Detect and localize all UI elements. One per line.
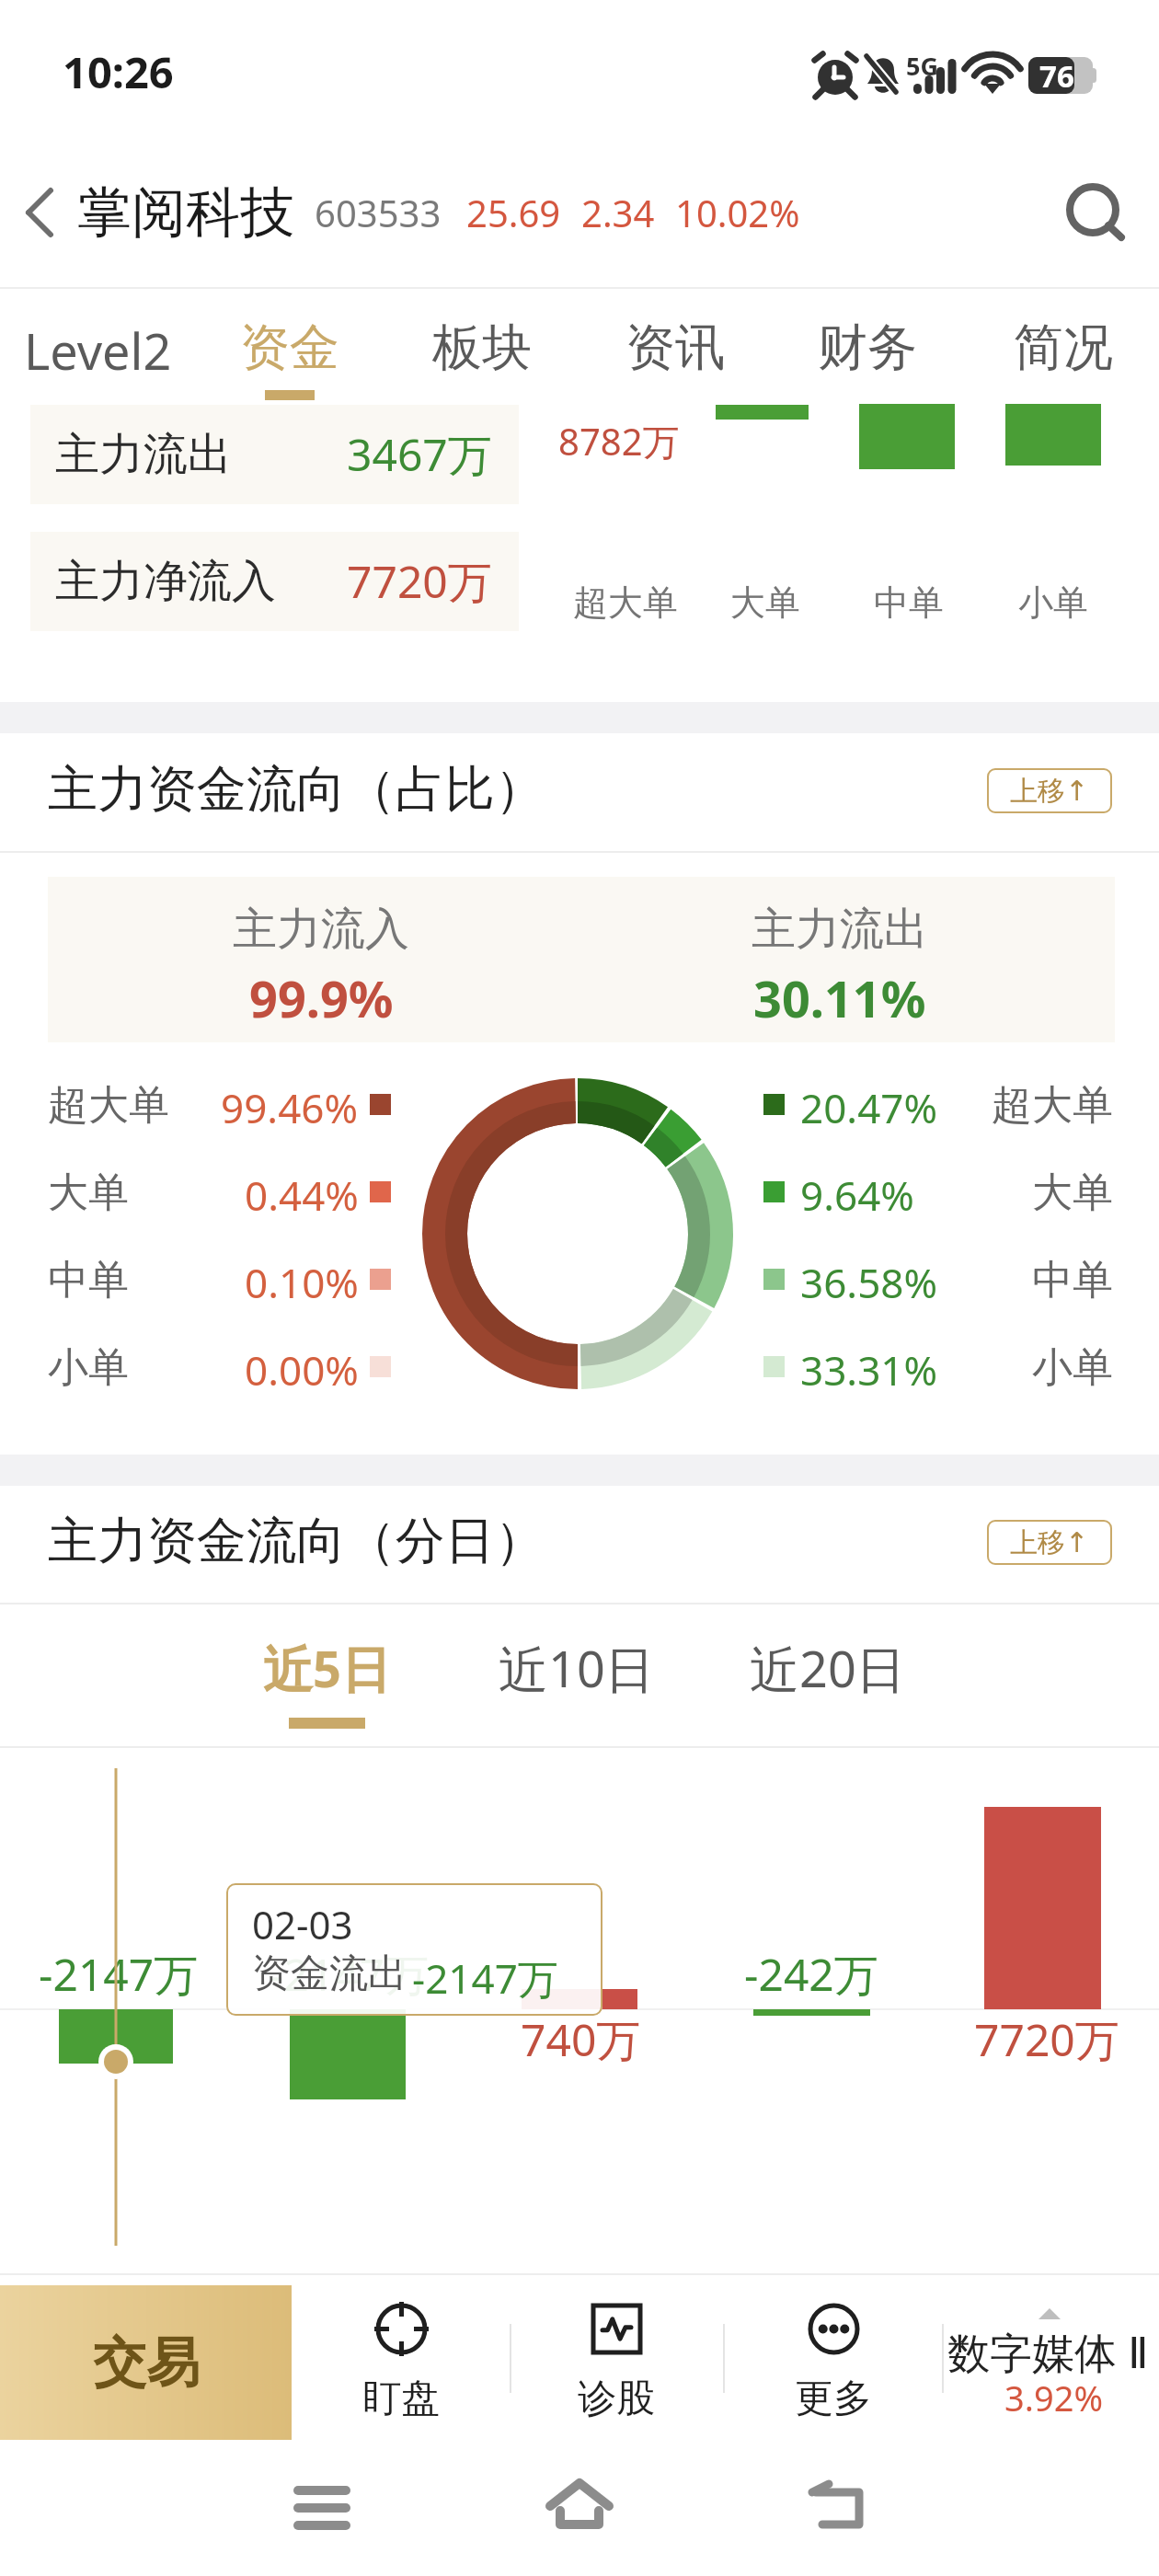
staticText: 近20日 bbox=[750, 1634, 906, 1702]
button[interactable]: 更多 bbox=[741, 2285, 925, 2440]
button[interactable]: 板块 bbox=[385, 316, 579, 408]
staticText: 资金流出 bbox=[252, 1949, 407, 1998]
staticText: 0.00% bbox=[245, 1342, 359, 1397]
button[interactable]: 简况 bbox=[967, 316, 1159, 408]
staticText: 主力流出 bbox=[55, 427, 232, 482]
button[interactable]: 近5日 bbox=[216, 1604, 437, 1746]
staticText: 超大单 bbox=[992, 1080, 1113, 1131]
staticText: Level2 bbox=[24, 316, 172, 385]
button[interactable]: 财务 bbox=[771, 316, 964, 408]
staticText: 9.64% bbox=[800, 1167, 914, 1223]
button[interactable]: Home bbox=[522, 2466, 633, 2558]
staticText: 0.44% bbox=[245, 1167, 359, 1223]
staticText: 中单 bbox=[48, 1255, 129, 1305]
staticText: 3.92% bbox=[1004, 2374, 1103, 2421]
staticText: 超大单 bbox=[48, 1080, 169, 1131]
staticText: 0.10% bbox=[245, 1255, 359, 1310]
button[interactable]: Back bbox=[0, 171, 83, 254]
staticText: 小单 bbox=[1018, 581, 1088, 625]
staticText: 超大单 bbox=[573, 581, 678, 625]
button[interactable]: 近20日 bbox=[717, 1604, 938, 1746]
staticText: 主力流入 bbox=[233, 902, 409, 957]
staticText: 中单 bbox=[1032, 1255, 1113, 1305]
button[interactable]: 上移↑ bbox=[987, 768, 1112, 813]
staticText: 诊股 bbox=[578, 2375, 655, 2423]
staticText: 近10日 bbox=[499, 1634, 655, 1702]
button[interactable]: Level2 bbox=[1, 316, 194, 408]
staticText: 99.46% bbox=[221, 1080, 359, 1135]
button[interactable]: 近10日 bbox=[466, 1604, 687, 1746]
staticText: 大单 bbox=[48, 1167, 129, 1218]
staticText: 中单 bbox=[874, 581, 944, 625]
staticText: 资讯 bbox=[625, 316, 725, 379]
staticText: 主力资金流向（分日） bbox=[48, 1510, 545, 1572]
staticText: 主力净流入 bbox=[55, 554, 276, 609]
staticText: 740万 bbox=[521, 2009, 641, 2070]
button[interactable]: 上移↑ bbox=[987, 1520, 1112, 1565]
staticText: 20.47% bbox=[800, 1080, 938, 1135]
staticText: -2147万 bbox=[39, 1944, 199, 2005]
button[interactable]: 主力流出 bbox=[30, 405, 519, 504]
staticText: 10.02% bbox=[675, 188, 800, 237]
staticText: 资金 bbox=[240, 316, 339, 379]
staticText: 简况 bbox=[1014, 316, 1113, 379]
staticText: 99.9% bbox=[249, 964, 394, 1032]
staticText: 7720万 bbox=[347, 551, 492, 612]
button[interactable]: 交易 bbox=[0, 2285, 292, 2440]
button[interactable]: Recents bbox=[267, 2466, 377, 2558]
staticText: 36.58% bbox=[800, 1255, 938, 1310]
button[interactable]: 主力净流入 bbox=[30, 532, 519, 631]
staticText: 主力流出 bbox=[752, 902, 928, 957]
staticText: 30.11% bbox=[753, 964, 926, 1032]
staticText: 更多 bbox=[795, 2375, 872, 2423]
staticText: 主力资金流向（占比） bbox=[48, 758, 545, 821]
staticText: 交易 bbox=[93, 2329, 200, 2397]
button[interactable]: 盯盘 bbox=[309, 2285, 493, 2440]
staticText: 25.69 bbox=[466, 188, 561, 237]
button[interactable]: 资金 bbox=[193, 316, 386, 408]
button[interactable]: Search bbox=[1049, 168, 1137, 257]
staticText: -2147万 bbox=[412, 1950, 558, 2006]
staticText: 5G bbox=[906, 49, 938, 83]
staticText: 上移↑ bbox=[1010, 1525, 1089, 1560]
staticText: 数字媒体 Ⅱ bbox=[947, 2323, 1149, 2381]
staticText: 上移↑ bbox=[1010, 774, 1089, 809]
staticText: 掌阅科技 bbox=[77, 178, 294, 247]
staticText: 板块 bbox=[432, 316, 532, 379]
button[interactable]: Back bbox=[782, 2466, 892, 2558]
staticText: 财务 bbox=[818, 316, 917, 379]
staticText: 02-03 bbox=[252, 1898, 353, 1950]
staticText: -2147万 bbox=[270, 1944, 430, 2005]
staticText: -242万 bbox=[744, 1944, 878, 2005]
staticText: 小单 bbox=[48, 1342, 129, 1393]
staticText: 大单 bbox=[1032, 1167, 1113, 1218]
button[interactable]: 资讯 bbox=[579, 316, 772, 408]
staticText: 2.34 bbox=[581, 188, 655, 237]
staticText: 大单 bbox=[730, 581, 800, 625]
staticText: 33.31% bbox=[800, 1342, 938, 1397]
staticText: 近5日 bbox=[263, 1634, 391, 1702]
button[interactable]: 数字媒体 Ⅱ bbox=[944, 2285, 1159, 2440]
staticText: 盯盘 bbox=[362, 2375, 440, 2423]
staticText: 8782万 bbox=[558, 416, 680, 466]
staticText: 7720万 bbox=[974, 2009, 1119, 2070]
button[interactable]: 诊股 bbox=[524, 2285, 708, 2440]
staticText: 3467万 bbox=[347, 424, 492, 485]
staticText: 小单 bbox=[1032, 1342, 1113, 1393]
staticText: 76 bbox=[1039, 55, 1074, 97]
staticText: 603533 bbox=[315, 188, 442, 237]
staticText: 10:26 bbox=[63, 42, 174, 101]
